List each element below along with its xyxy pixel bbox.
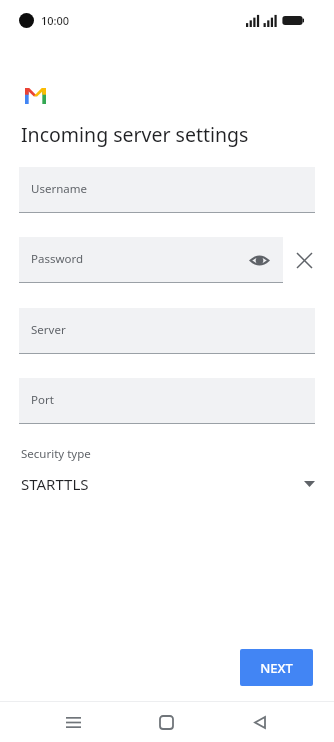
staticText: STARTTLS (21, 474, 89, 494)
staticText: Password (31, 251, 84, 267)
staticText: Server (31, 322, 66, 338)
button[interactable]: Server (19, 308, 315, 354)
button[interactable]: Back (240, 702, 280, 742)
staticText: Incoming server settings (21, 121, 249, 148)
button[interactable]: Username (19, 167, 315, 213)
button[interactable]: Home (146, 702, 186, 742)
button[interactable]: Clear password (289, 245, 319, 275)
staticText: 10:00 (41, 13, 70, 28)
staticText: Security type (21, 446, 91, 462)
button[interactable]: Show password (247, 248, 271, 272)
staticText: NEXT (260, 659, 293, 677)
button[interactable]: Recent apps (53, 702, 93, 742)
button[interactable]: NEXT (240, 649, 313, 686)
button[interactable]: Security type (0, 446, 334, 494)
staticText: Username (31, 181, 87, 197)
button[interactable]: Port (19, 378, 315, 424)
button[interactable]: Password (19, 237, 283, 283)
staticText: Port (31, 392, 54, 408)
